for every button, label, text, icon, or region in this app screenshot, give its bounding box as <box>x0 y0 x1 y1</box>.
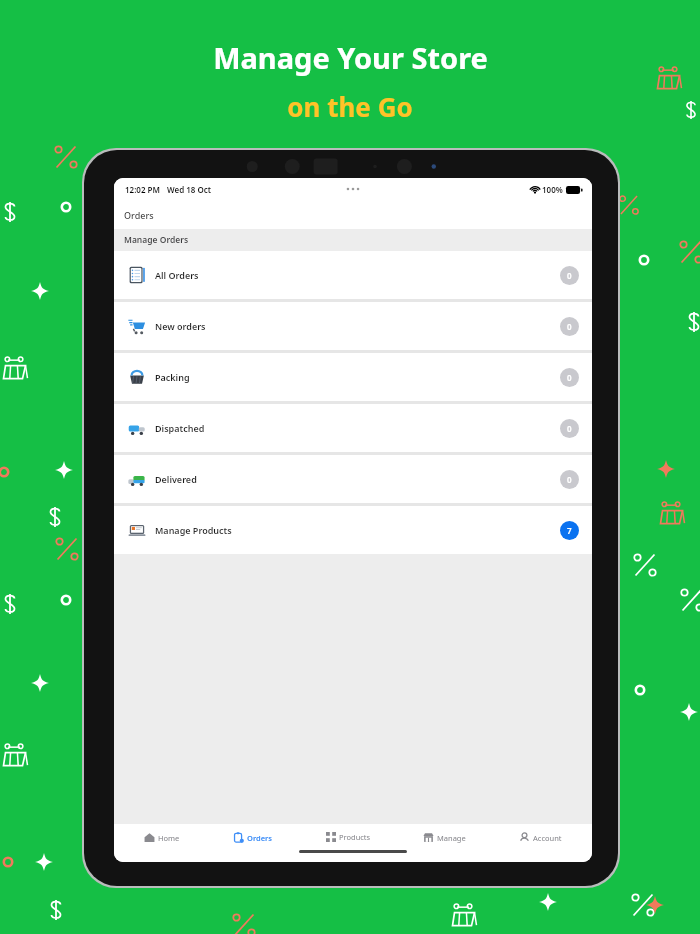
staticText: 7 <box>567 525 572 536</box>
staticText: Manage Products <box>155 524 232 536</box>
button[interactable]: Packing <box>114 353 592 401</box>
staticText: Orders <box>124 209 154 221</box>
staticText: 0 <box>567 474 572 485</box>
staticText: 100% <box>542 184 563 195</box>
staticText: 0 <box>567 423 572 434</box>
button[interactable]: Account <box>515 829 566 846</box>
button[interactable]: Dispatched <box>114 404 592 452</box>
staticText: All Orders <box>155 269 199 281</box>
staticText: Packing <box>155 371 190 383</box>
button[interactable]: Manage Products <box>114 506 592 554</box>
staticText: Products <box>339 832 371 842</box>
button[interactable]: All Orders <box>114 251 592 299</box>
button[interactable]: Products <box>322 829 375 845</box>
staticText: Manage <box>437 833 466 843</box>
staticText: Orders <box>247 833 273 843</box>
button[interactable]: New orders <box>114 302 592 350</box>
button[interactable]: Home <box>140 829 184 846</box>
staticText: 0 <box>567 321 572 332</box>
staticText: 0 <box>567 372 572 383</box>
button[interactable]: Delivered <box>114 455 592 503</box>
staticText: Manage Your Store <box>213 38 488 77</box>
staticText: Home <box>158 833 180 843</box>
staticText: Wed 18 Oct <box>167 184 212 195</box>
button[interactable]: Orders <box>229 829 277 846</box>
staticText: 0 <box>567 270 572 281</box>
staticText: Dispatched <box>155 422 205 434</box>
staticText: Account <box>533 833 562 843</box>
button[interactable]: Manage <box>419 829 470 846</box>
staticText: Delivered <box>155 473 197 485</box>
staticText: on the Go <box>287 89 413 124</box>
staticText: New orders <box>155 320 206 332</box>
staticText: 12:02 PM <box>125 184 160 195</box>
staticText: Manage Orders <box>124 234 189 246</box>
